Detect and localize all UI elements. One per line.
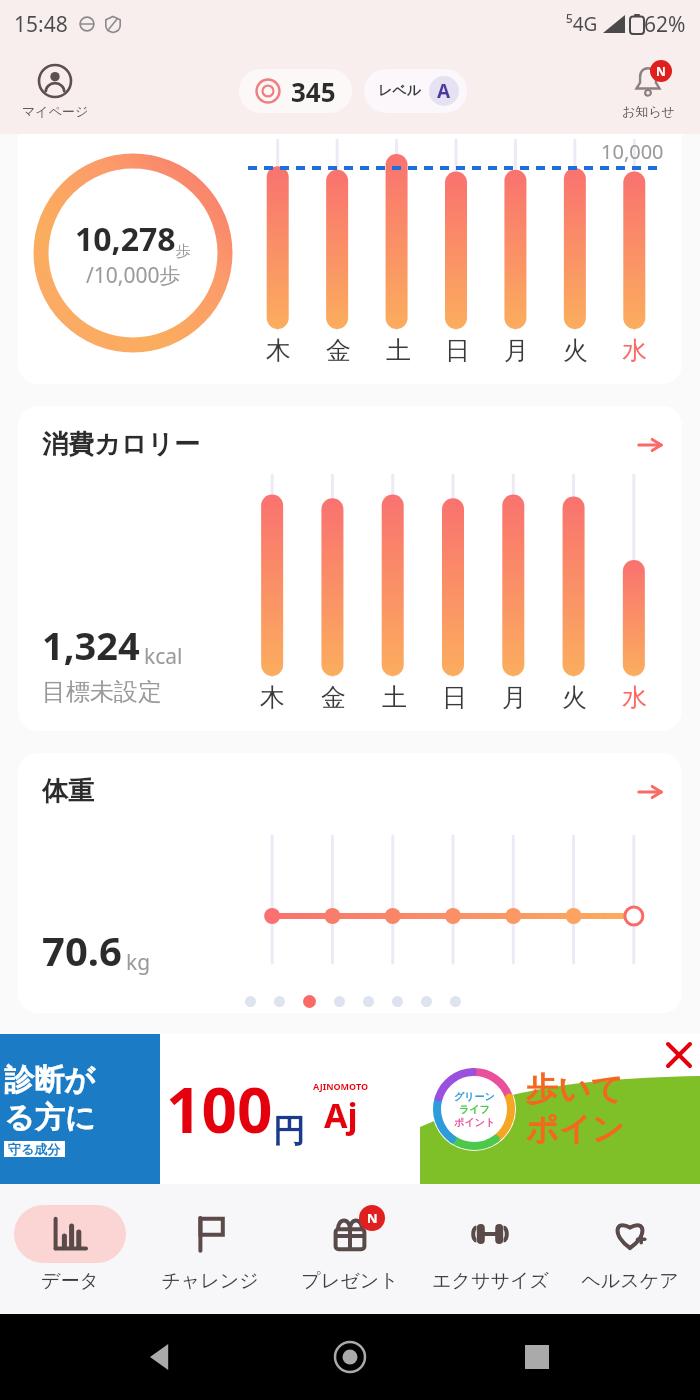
staticText: 10,278 [75,217,176,261]
button[interactable]: グリーン [420,1034,700,1184]
button[interactable]: 閉じる [664,1040,694,1070]
staticText: 345 [291,74,336,109]
staticText: 100 [166,1067,273,1151]
staticText: 火 [562,682,587,713]
button[interactable]: 戻る [139,1333,187,1381]
staticText: 水 [622,335,647,366]
button[interactable]: お知らせ [596,48,700,134]
button[interactable]: データ [0,1184,140,1314]
staticText: ⁵4G [566,11,598,37]
staticText: ヘルスケア [581,1269,679,1293]
staticText: ポイント [454,1116,495,1129]
staticText: 守る成分 [8,1141,61,1157]
button[interactable]: 345 [239,69,352,113]
staticText: お知らせ [622,103,675,119]
staticText: N [656,63,666,79]
button[interactable]: ヘルスケア [560,1184,700,1314]
staticText: グリーン [454,1090,495,1103]
staticText: 水 [622,682,647,713]
button[interactable]: 10,278 [18,134,682,384]
staticText: ライフ [459,1103,490,1116]
button[interactable]: 体重 [18,753,682,1013]
other: 詳細 [636,778,664,806]
staticText: ポイン [526,1109,625,1149]
staticText: 金 [326,335,351,366]
staticText: レベル [378,82,421,100]
staticText: 金 [321,682,346,713]
staticText: マイページ [22,103,89,119]
staticText: 日 [442,682,467,713]
staticText: 診断が [4,1061,95,1099]
staticText: Aj [324,1092,358,1138]
staticText: 木 [266,335,291,366]
button[interactable]: N [280,1184,420,1314]
staticText: エクササイズ [432,1269,549,1293]
staticText: データ [41,1269,99,1293]
staticText: プレゼント [301,1269,399,1293]
other: 詳細 [636,431,664,459]
staticText: AJINOMOTO [313,1080,369,1092]
staticText: 土 [386,335,411,366]
staticText: 土 [382,682,407,713]
staticText: 歩いて [526,1069,624,1109]
button[interactable]: 消費カロリー [18,406,682,731]
staticText: kcal [144,642,183,671]
staticText: 10,000 [601,138,664,165]
staticText: kg [126,948,151,977]
staticText: 歩 [176,242,191,261]
button[interactable]: ホーム [326,1333,374,1381]
staticText: 15:48 [14,10,68,39]
staticText: る方に [4,1099,96,1137]
staticText: 62% [644,10,686,39]
button[interactable]: チャレンジ [140,1184,280,1314]
staticText: チャレンジ [161,1269,259,1293]
staticText: 日 [445,335,470,366]
staticText: 月 [504,335,529,366]
staticText: 70.6 [42,923,122,977]
staticText: 体重 [42,775,94,808]
staticText: 月 [502,682,527,713]
staticText: 目標未設定 [42,677,162,707]
staticText: 円 [273,1111,305,1151]
staticText: 火 [563,335,588,366]
staticText: 消費カロリー [42,428,200,461]
button[interactable]: 最近のアプリ [513,1333,561,1381]
button[interactable]: レベル [364,69,467,113]
staticText: /10,000歩 [86,261,181,290]
button[interactable]: エクササイズ [420,1184,560,1314]
staticText: N [367,1209,378,1227]
staticText: 木 [260,682,285,713]
button[interactable]: マイページ [0,48,110,134]
staticText: 1,324 [42,619,140,671]
button[interactable]: 診断が [0,1034,420,1184]
staticText: A [437,78,451,104]
